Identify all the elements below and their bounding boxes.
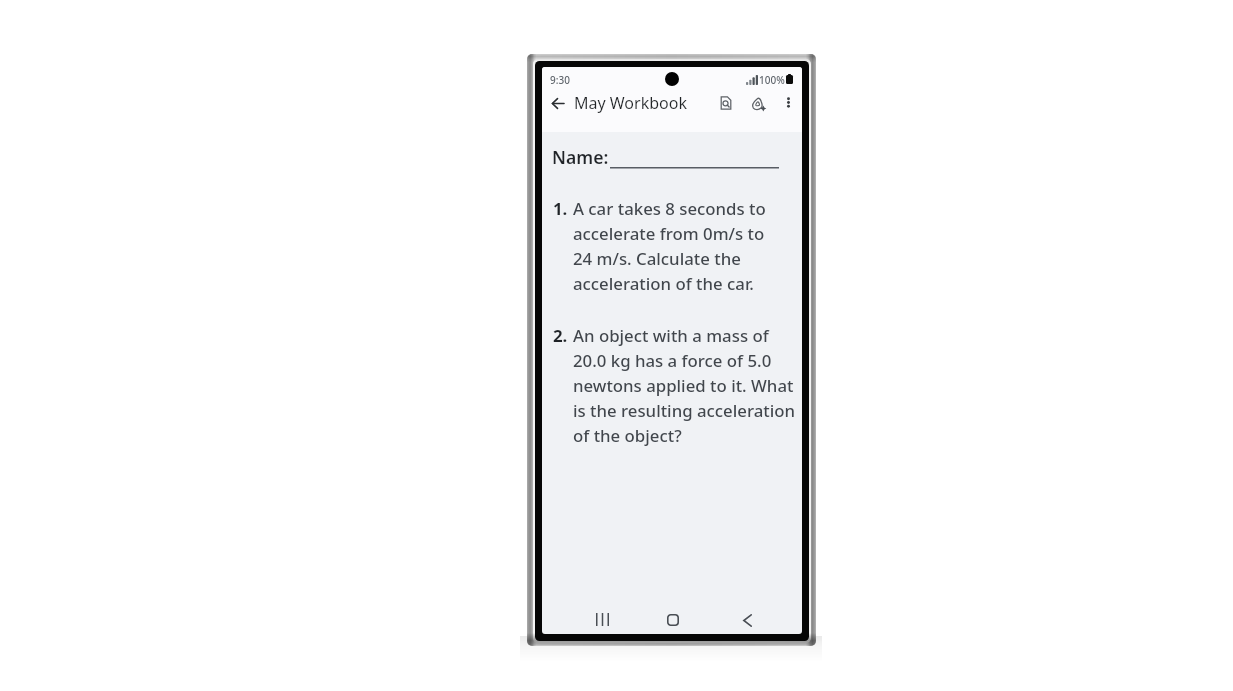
- button[interactable]: Find in document: [713, 90, 739, 116]
- staticText: A car takes 8 seconds to accelerate from…: [573, 195, 766, 295]
- button[interactable]: Document page: [542, 132, 802, 601]
- button[interactable]: 1.: [553, 195, 766, 295]
- staticText: 100%: [759, 73, 785, 87]
- staticText: May Workbook: [574, 92, 687, 114]
- button[interactable]: Back: [545, 90, 571, 116]
- button[interactable]: More options: [776, 90, 800, 114]
- staticText: 9:30: [550, 73, 570, 87]
- staticText: An object with a mass of 20.0 kg has a f…: [573, 322, 796, 447]
- staticText: 2.: [553, 322, 573, 347]
- button[interactable]: Name:: [552, 145, 721, 169]
- button[interactable]: 2.: [553, 322, 796, 447]
- button[interactable]: Home: [660, 607, 686, 633]
- button[interactable]: Gemini assistant: [745, 91, 771, 117]
- button[interactable]: Back: [734, 607, 760, 633]
- button[interactable]: Recent apps: [589, 606, 615, 632]
- staticText: Name:: [552, 145, 609, 169]
- staticText: 1.: [553, 195, 573, 220]
